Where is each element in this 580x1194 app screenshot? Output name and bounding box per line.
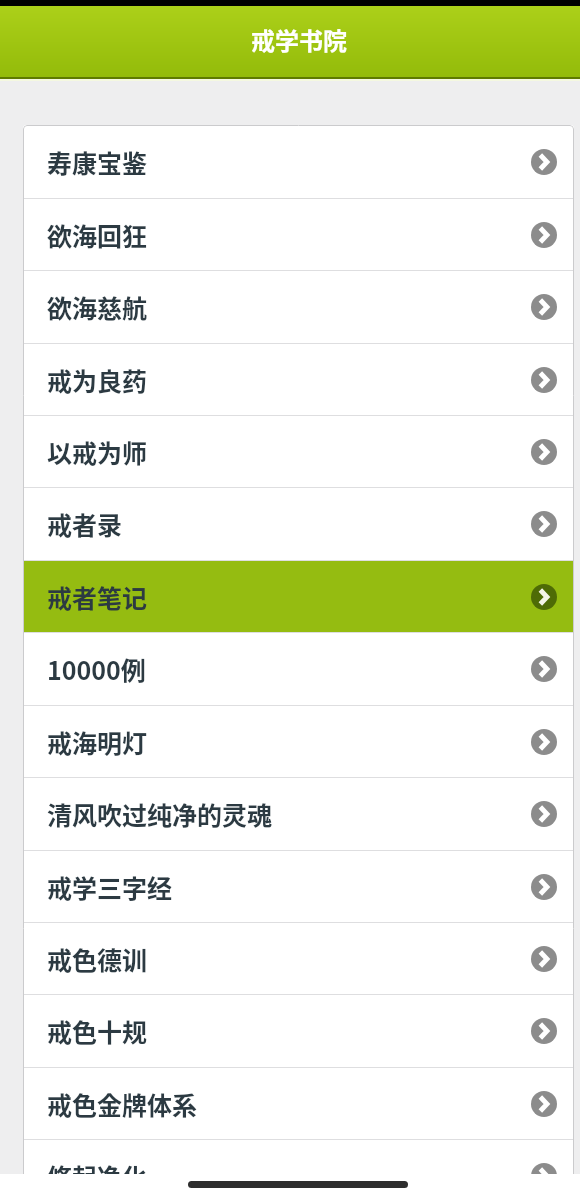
button[interactable]: 戒色金牌体系 bbox=[23, 1068, 574, 1139]
button[interactable]: 戒海明灯 bbox=[23, 706, 574, 777]
other: 打开 寿康宝鉴 bbox=[531, 149, 557, 175]
button[interactable]: 戒色德训 bbox=[23, 923, 574, 994]
staticText: 戒色金牌体系 bbox=[47, 1086, 531, 1122]
button[interactable]: 欲海慈航 bbox=[23, 271, 574, 343]
button[interactable]: 戒色十规 bbox=[23, 995, 574, 1067]
staticText: 戒者笔记 bbox=[47, 579, 531, 615]
other: 打开 10000例 bbox=[531, 656, 557, 682]
other: 打开 戒为良药 bbox=[531, 367, 557, 393]
button[interactable]: 以戒为师 bbox=[23, 416, 574, 487]
staticText: 戒海明灯 bbox=[47, 724, 531, 760]
staticText: 戒色德训 bbox=[47, 941, 531, 977]
staticText: 戒色十规 bbox=[47, 1013, 531, 1049]
other: 打开 戒色德训 bbox=[531, 946, 557, 972]
other: 打开 戒者笔记 bbox=[531, 584, 557, 610]
button[interactable]: 修起净化 bbox=[23, 1140, 574, 1194]
other: 打开 戒色十规 bbox=[531, 1018, 557, 1044]
staticText: 戒者录 bbox=[47, 506, 531, 542]
staticText: 欲海慈航 bbox=[47, 289, 531, 325]
button[interactable]: 戒为良药 bbox=[23, 344, 574, 415]
staticText: 修起净化 bbox=[47, 1158, 531, 1194]
other: 打开 清风吹过纯净的灵魂 bbox=[531, 801, 557, 827]
staticText: 戒学书院 bbox=[251, 22, 347, 57]
staticText: 戒为良药 bbox=[47, 362, 531, 398]
staticText: 戒学三字经 bbox=[47, 869, 531, 905]
staticText: 以戒为师 bbox=[47, 434, 531, 470]
other: 打开 欲海慈航 bbox=[531, 294, 557, 320]
other: 打开 戒学三字经 bbox=[531, 874, 557, 900]
button[interactable]: 寿康宝鉴 bbox=[23, 125, 574, 198]
other: 打开 戒海明灯 bbox=[531, 729, 557, 755]
button[interactable]: 戒者录 bbox=[23, 488, 574, 560]
other: 打开 以戒为师 bbox=[531, 439, 557, 465]
button[interactable]: 戒学三字经 bbox=[23, 851, 574, 922]
staticText: 10000例 bbox=[47, 651, 531, 687]
other: 打开 欲海回狂 bbox=[531, 222, 557, 248]
other: 打开 戒色金牌体系 bbox=[531, 1091, 557, 1117]
other: 打开 修起净化 bbox=[531, 1163, 557, 1189]
staticText: 清风吹过纯净的灵魂 bbox=[47, 796, 531, 832]
button[interactable]: 戒者笔记 bbox=[23, 561, 574, 632]
button[interactable]: 10000例 bbox=[23, 633, 574, 705]
button[interactable]: 清风吹过纯净的灵魂 bbox=[23, 778, 574, 850]
staticText: 寿康宝鉴 bbox=[47, 144, 531, 180]
staticText: 欲海回狂 bbox=[47, 217, 531, 253]
other: 打开 戒者录 bbox=[531, 511, 557, 537]
button[interactable]: 欲海回狂 bbox=[23, 199, 574, 270]
